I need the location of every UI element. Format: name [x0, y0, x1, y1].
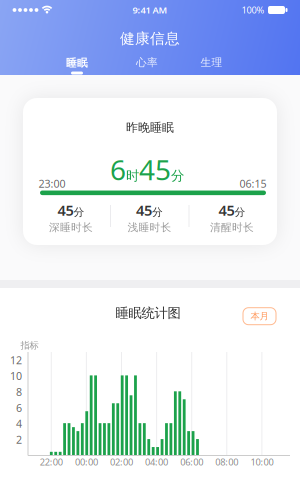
staticText: 08:00 — [215, 456, 238, 468]
staticText: 清醒时长 — [210, 221, 254, 234]
button[interactable]: 本月 — [243, 308, 276, 325]
staticText: 10:00 — [250, 456, 273, 468]
staticText: 45 — [136, 200, 152, 220]
staticText: 12 — [10, 353, 22, 367]
staticText: 心率 — [136, 56, 158, 69]
staticText: 分 — [234, 206, 245, 219]
staticText: 8 — [16, 385, 22, 399]
staticText: 45 — [218, 200, 234, 220]
staticText: 昨晚睡眠 — [126, 120, 174, 135]
staticText: 10 — [10, 369, 22, 383]
staticText: 分 — [152, 206, 163, 219]
staticText: 分 — [73, 206, 84, 219]
staticText: 6 — [16, 401, 22, 415]
button[interactable]: 生理 — [200, 56, 222, 69]
staticText: 睡眠 — [66, 56, 88, 69]
staticText: 本月 — [250, 310, 268, 322]
staticText: 6 — [110, 151, 126, 188]
staticText: 04:00 — [145, 456, 168, 468]
staticText: 06:00 — [180, 456, 203, 468]
staticText: 时 — [126, 168, 139, 184]
staticText: 指标 — [20, 340, 38, 351]
staticText: 00:00 — [75, 456, 98, 468]
staticText: 9:41 AM — [132, 4, 167, 16]
button[interactable]: 心率 — [136, 56, 158, 69]
staticText: 45 — [57, 200, 73, 220]
staticText: 02:00 — [110, 456, 133, 468]
staticText: 浅睡时长 — [127, 221, 171, 234]
staticText: 23:00 — [38, 176, 65, 191]
staticText: 22:00 — [40, 456, 63, 468]
staticText: 06:15 — [239, 176, 266, 191]
staticText: 4 — [16, 417, 22, 431]
staticText: 睡眠统计图 — [115, 305, 180, 321]
button[interactable]: 睡眠 — [66, 56, 88, 74]
staticText: 分 — [171, 168, 184, 184]
staticText: 健康信息 — [120, 29, 180, 47]
staticText: 生理 — [200, 56, 222, 69]
staticText: 2 — [16, 432, 22, 447]
staticText: 100% — [241, 4, 264, 16]
staticText: 深睡时长 — [49, 221, 93, 234]
staticText: 45 — [139, 151, 171, 188]
